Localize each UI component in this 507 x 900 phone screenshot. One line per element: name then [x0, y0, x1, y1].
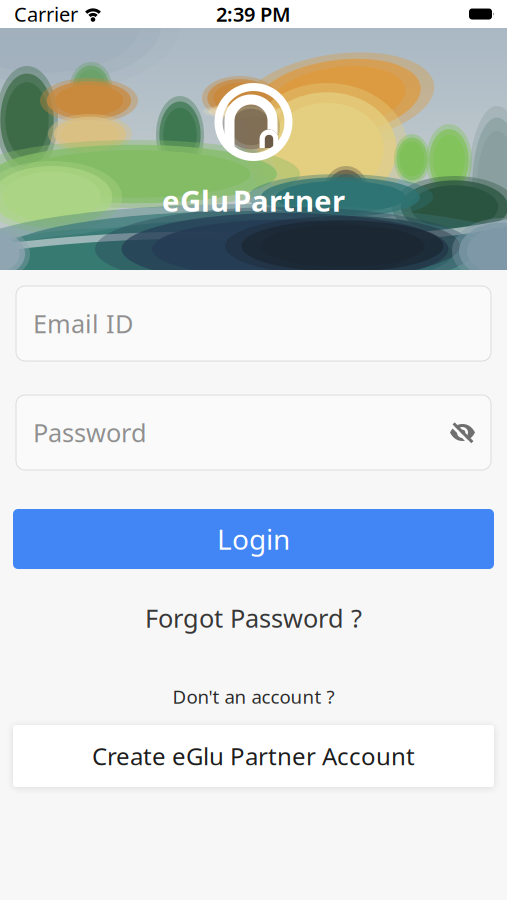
- staticText: Forgot Password ?: [145, 601, 362, 635]
- button[interactable]: Forgot Password ?: [145, 601, 362, 635]
- staticText: 2:39 PM: [216, 1, 291, 27]
- staticText: Login: [217, 520, 290, 558]
- button[interactable]: Password: [16, 395, 491, 470]
- staticText: Carrier: [14, 1, 78, 27]
- staticText: Don't an account ?: [172, 684, 334, 709]
- button[interactable]: Login: [13, 509, 494, 569]
- staticText: Email ID: [33, 307, 133, 340]
- staticText: Password: [33, 416, 147, 449]
- staticText: Create eGlu Partner Account: [92, 740, 415, 772]
- button[interactable]: Email ID: [16, 286, 491, 361]
- staticText: eGlu: [162, 181, 229, 220]
- button[interactable]: Show password: [449, 419, 476, 446]
- staticText: Partner: [233, 181, 345, 220]
- button[interactable]: Create eGlu Partner Account: [13, 725, 494, 787]
